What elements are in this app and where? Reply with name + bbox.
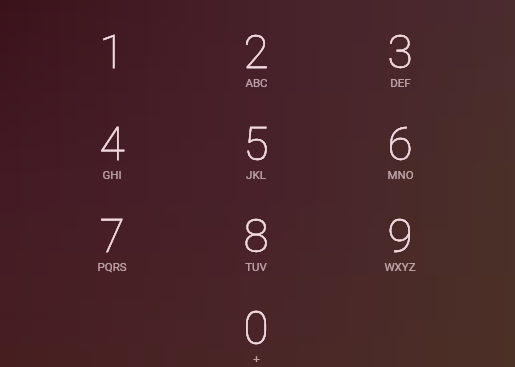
staticText: 1	[99, 25, 125, 79]
staticText: PQRS	[97, 260, 127, 273]
button[interactable]: 0	[184, 281, 328, 367]
staticText: 0	[243, 301, 269, 355]
button[interactable]: 9	[328, 189, 472, 281]
button[interactable]: 1	[40, 5, 184, 97]
button[interactable]: 2	[184, 5, 328, 97]
staticText: GHI	[102, 168, 122, 181]
staticText: 8	[243, 209, 269, 263]
staticText: 4	[99, 117, 125, 171]
staticText: 0	[243, 301, 269, 355]
staticText: 9	[387, 209, 413, 263]
staticText: +	[253, 352, 260, 365]
button[interactable]: 6	[328, 97, 472, 189]
staticText: 9	[387, 209, 413, 263]
staticText: 6	[387, 117, 413, 171]
button[interactable]: 7	[40, 189, 184, 281]
staticText: 5	[243, 117, 269, 171]
button[interactable]: 4	[40, 97, 184, 189]
staticText: 7	[99, 209, 125, 263]
staticText: DEF	[390, 76, 411, 89]
staticText: 3	[387, 25, 413, 79]
staticText: TUV	[245, 260, 267, 273]
button[interactable]: 3	[328, 5, 472, 97]
staticText: JKL	[246, 168, 266, 181]
staticText: 4	[99, 117, 125, 171]
staticText: 7	[99, 209, 125, 263]
staticText: WXYZ	[384, 260, 416, 273]
staticText: 8	[243, 209, 269, 263]
staticText: ABC	[245, 76, 268, 89]
staticText: 2	[243, 25, 269, 79]
staticText: 2	[243, 25, 269, 79]
staticText: 3	[387, 25, 413, 79]
staticText: 5	[243, 117, 269, 171]
button[interactable]: 5	[184, 97, 328, 189]
staticText: MNO	[387, 168, 414, 181]
staticText: 6	[387, 117, 413, 171]
button[interactable]: 8	[184, 189, 328, 281]
staticText: 1	[99, 25, 125, 79]
